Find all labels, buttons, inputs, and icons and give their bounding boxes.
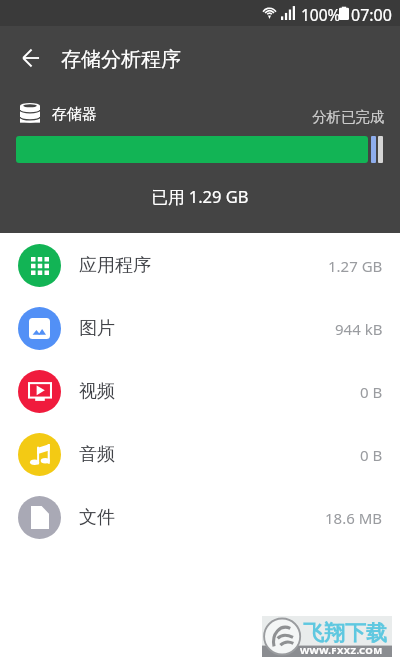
staticText: WWW.FXXZ.COM (300, 644, 383, 657)
staticText: 应用程序 (79, 254, 151, 277)
staticText: 文件 (79, 506, 115, 529)
staticText: 1.27 GB (328, 256, 383, 276)
button[interactable]: 图片 (0, 297, 400, 360)
staticText: 存储器 (52, 105, 97, 124)
staticText: 音频 (79, 443, 115, 466)
staticText: 分析已完成 (312, 108, 385, 126)
button[interactable]: 视频 (0, 360, 400, 423)
staticText: 存储分析程序 (61, 47, 181, 72)
button[interactable]: 文件 (0, 486, 400, 549)
staticText: 100% (301, 4, 341, 25)
button[interactable]: Back (9, 36, 53, 80)
staticText: 07:00 (351, 4, 392, 26)
button[interactable]: 应用程序 (0, 234, 400, 297)
staticText: 18.6 MB (325, 508, 383, 528)
staticText: 图片 (79, 317, 115, 340)
staticText: 飞翔下载 (303, 620, 387, 646)
staticText: 0 B (360, 382, 383, 402)
staticText: 已用 1.29 GB (0, 185, 400, 208)
staticText: 944 kB (335, 319, 383, 339)
staticText: 视频 (79, 380, 115, 403)
button[interactable]: 音频 (0, 423, 400, 486)
staticText: 0 B (360, 445, 383, 465)
